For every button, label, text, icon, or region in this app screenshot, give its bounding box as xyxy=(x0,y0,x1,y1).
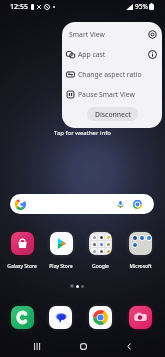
button[interactable]: Smart View xyxy=(62,24,162,44)
button[interactable]: Home screen pages xyxy=(70,282,84,290)
staticText: 12:55 xyxy=(10,2,28,12)
button[interactable]: Google xyxy=(80,232,120,270)
staticText: Galaxy Store xyxy=(7,263,37,270)
button[interactable]: Microsoft xyxy=(120,232,160,270)
button[interactable]: Disconnect xyxy=(87,107,138,121)
staticText: Microsoft xyxy=(129,263,152,270)
button[interactable]: Back xyxy=(117,336,141,357)
button[interactable]: Pause Smart View xyxy=(62,84,162,104)
button[interactable]: Chrome xyxy=(89,306,112,329)
button[interactable]: Play Store xyxy=(41,232,81,270)
staticText: Smart View xyxy=(69,30,105,39)
button[interactable]: Galaxy Store xyxy=(2,232,42,270)
button[interactable]: Phone xyxy=(11,306,34,329)
button[interactable]: Tap for weather info xyxy=(0,129,165,137)
button[interactable]: Change aspect ratio xyxy=(62,64,162,84)
button[interactable]: Voice search xyxy=(10,194,154,214)
staticText: Google xyxy=(92,263,109,270)
staticText: Change aspect ratio xyxy=(78,70,142,79)
button[interactable]: Voice search xyxy=(114,198,127,211)
staticText: Pause Smart View xyxy=(78,90,135,99)
staticText: Play Store xyxy=(49,263,73,270)
button[interactable]: Camera xyxy=(129,306,152,329)
button[interactable]: Messages xyxy=(49,306,72,329)
staticText: Disconnect xyxy=(95,110,131,119)
button[interactable]: Google Lens xyxy=(131,198,144,211)
button[interactable]: Recents xyxy=(24,336,48,357)
staticText: App cast xyxy=(78,50,106,59)
staticText: 95% xyxy=(135,2,148,11)
button[interactable]: Home xyxy=(71,336,95,357)
button[interactable]: App cast xyxy=(62,44,162,64)
